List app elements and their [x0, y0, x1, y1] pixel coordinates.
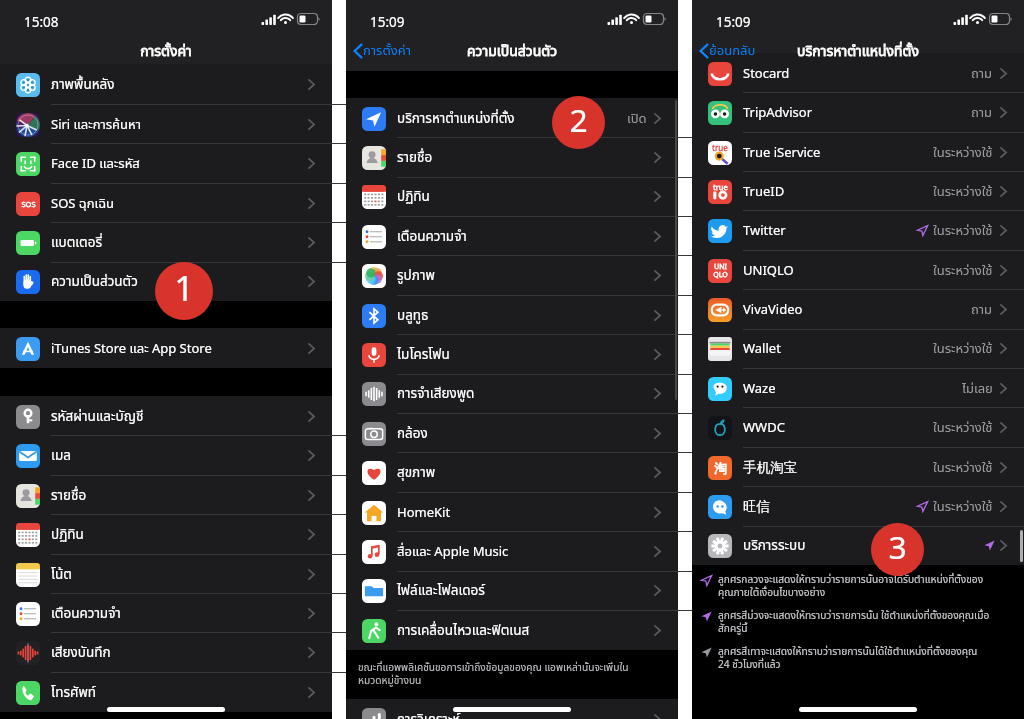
staticText: การตั้งค่า: [0, 41, 332, 62]
staticText: ในระหว่างใช้: [933, 497, 993, 517]
button[interactable]: ภาพพื้นหลัง: [0, 64, 332, 104]
staticText: ลูกศรกลวงจะแสดงให้ทราบว่ารายการนั้นอาจได…: [718, 572, 984, 601]
staticText: โทรศัพท์: [51, 683, 97, 703]
staticText: กล้อง: [397, 424, 428, 444]
staticText: UNIQLO: [743, 261, 794, 281]
staticText: SOS: [21, 199, 36, 210]
staticText: 15:09: [370, 13, 405, 33]
staticText: รายชื่อ: [51, 486, 87, 506]
button[interactable]: Waze: [692, 368, 1024, 408]
button[interactable]: บริการหาตำแหน่งที่ตั้ง: [346, 98, 678, 138]
staticText: ถาม: [971, 300, 993, 320]
button[interactable]: 淘: [692, 447, 1024, 487]
staticText: iTunes Store และ App Store: [51, 339, 212, 359]
staticText: ไมโครโฟน: [397, 345, 450, 365]
staticText: สื่อและ Apple Music: [397, 542, 509, 562]
staticText: บริการหาตำแหน่งที่ตั้ง: [397, 109, 515, 129]
button[interactable]: iTunes Store และ App Store: [0, 328, 332, 368]
button[interactable]: สื่อและ Apple Music: [346, 531, 678, 571]
button[interactable]: 旺信: [692, 486, 1024, 526]
staticText: สุขภาพ: [397, 463, 436, 483]
staticText: 15:08: [24, 13, 59, 33]
staticText: ไม่เลย: [962, 379, 993, 399]
staticText: 旺信: [743, 498, 770, 515]
button[interactable]: เมล: [0, 435, 332, 475]
button[interactable]: Wallet: [692, 328, 1024, 368]
staticText: true: [712, 143, 728, 155]
button[interactable]: เตือนความจำ: [346, 216, 678, 256]
staticText: ในระหว่างใช้: [933, 261, 993, 281]
button[interactable]: รูปภาพ: [346, 255, 678, 295]
button[interactable]: true: [692, 132, 1024, 172]
button[interactable]: กล้อง: [346, 413, 678, 453]
staticText: ในระหว่างใช้: [933, 339, 993, 359]
button[interactable]: UNI QLO: [692, 250, 1024, 290]
button[interactable]: Siri และการค้นหา: [0, 104, 332, 144]
staticText: รูปภาพ: [397, 266, 435, 286]
staticText: การจำเสียงพูด: [397, 384, 475, 404]
staticText: ในระหว่างใช้: [933, 458, 993, 478]
staticText: ความเป็นส่วนตัว: [51, 272, 138, 292]
button[interactable]: การจำเสียงพูด: [346, 373, 678, 413]
button[interactable]: Twitter: [692, 210, 1024, 250]
staticText: การวิเคราะห์: [397, 710, 461, 719]
button[interactable]: บริการระบบ: [692, 525, 1024, 565]
button[interactable]: เสียงบันทึก: [0, 632, 332, 672]
staticText: แบตเตอรี่: [51, 233, 103, 253]
button[interactable]: TripAdvisor: [692, 92, 1024, 132]
staticText: Siri และการค้นหา: [51, 115, 141, 135]
button[interactable]: ไฟล์และโฟลเดอร์: [346, 570, 678, 610]
staticText: 1: [174, 264, 194, 316]
staticText: ย้อนกลับ: [709, 41, 756, 61]
staticText: 手机淘宝: [743, 459, 797, 476]
button[interactable]: สุขภาพ: [346, 452, 678, 492]
staticText: เปิด: [627, 109, 647, 129]
button[interactable]: โน้ต: [0, 554, 332, 594]
button[interactable]: Face ID และรหัส: [0, 143, 332, 183]
staticText: ขณะที่แอพพลิเคชั่นขอการเข้าถึงข้อมูลของค…: [358, 660, 629, 689]
button[interactable]: บลูทูธ: [346, 295, 678, 335]
staticText: Twitter: [743, 221, 786, 241]
button[interactable]: ปฏิทิน: [346, 176, 678, 216]
staticText: รายชื่อ: [397, 148, 433, 168]
staticText: เตือนความจำ: [397, 227, 467, 247]
staticText: การเคลื่อนไหวและฟิตเนส: [397, 621, 530, 641]
staticText: เมล: [51, 446, 71, 466]
staticText: ในระหว่างใช้: [933, 221, 993, 241]
staticText: รหัสผ่านและบัญชี: [51, 407, 144, 427]
button[interactable]: การเคลื่อนไหวและฟิตเนส: [346, 610, 678, 650]
staticText: Face ID และรหัส: [51, 154, 140, 174]
button[interactable]: รหัสผ่านและบัญชี: [0, 396, 332, 436]
staticText: HomeKit: [397, 503, 451, 523]
button[interactable]: เตือนความจำ: [0, 593, 332, 633]
staticText: 15:09: [716, 13, 751, 33]
staticText: true: [713, 182, 728, 193]
button[interactable]: SOS: [0, 183, 332, 223]
button[interactable]: WWDC: [692, 407, 1024, 447]
button[interactable]: VivaVideo: [692, 289, 1024, 329]
staticText: เสียงบันทึก: [51, 643, 111, 663]
button[interactable]: ไมโครโฟน: [346, 334, 678, 374]
staticText: ลูกศรสีม่วงจะแสดงให้ทราบว่ารายการนั้น ใช…: [718, 608, 990, 637]
button[interactable]: แบตเตอรี่: [0, 222, 332, 262]
button[interactable]: การวิเคราะห์: [346, 699, 678, 719]
staticText: ในระหว่างใช้: [933, 418, 993, 438]
staticText: การตั้งค่า: [363, 41, 411, 61]
staticText: ในระหว่างใช้: [933, 143, 993, 163]
staticText: บริการหาตำแหน่งที่ตั้ง: [692, 41, 1024, 62]
staticText: SOS ฉุกเฉิน: [51, 194, 114, 214]
button[interactable]: ย้อนกลับ: [692, 38, 762, 64]
button[interactable]: รายชื่อ: [346, 137, 678, 177]
button[interactable]: HomeKit: [346, 492, 678, 532]
button[interactable]: รายชื่อ: [0, 475, 332, 515]
button[interactable]: Stocard: [692, 53, 1024, 93]
button[interactable]: ปฏิทิน: [0, 514, 332, 554]
staticText: โน้ต: [51, 565, 72, 585]
button[interactable]: ความเป็นส่วนตัว: [0, 261, 332, 301]
staticText: ไฟล์และโฟลเดอร์: [397, 581, 485, 601]
button[interactable]: การตั้งค่า: [346, 38, 417, 64]
staticText: Waze: [743, 379, 776, 399]
button[interactable]: true: [692, 171, 1024, 211]
button[interactable]: โทรศัพท์: [0, 672, 332, 712]
staticText: ถาม: [971, 103, 993, 123]
